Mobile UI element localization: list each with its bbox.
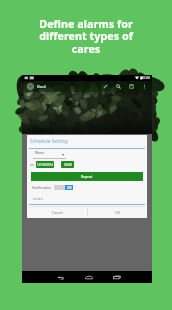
staticText: Repeat bbox=[81, 174, 93, 179]
staticText: Notification bbox=[32, 185, 52, 190]
staticText: Cancel bbox=[52, 210, 63, 215]
button[interactable]: Save bbox=[125, 81, 138, 92]
button[interactable]: More options bbox=[138, 81, 151, 92]
button[interactable]: 23:58 bbox=[61, 161, 74, 168]
button[interactable]: Edit bbox=[99, 81, 112, 92]
button[interactable]: Cancel bbox=[27, 207, 87, 218]
button[interactable]: Search bbox=[112, 81, 125, 92]
button[interactable]: Notification toggle bbox=[54, 185, 73, 190]
button[interactable]: OK bbox=[87, 207, 147, 218]
staticText: on bbox=[30, 163, 34, 167]
button[interactable]: App logo bbox=[27, 83, 34, 90]
staticText: 23:58 bbox=[142, 76, 151, 80]
staticText: 23:58 bbox=[64, 163, 72, 167]
button[interactable]: Repeat bbox=[31, 172, 143, 181]
staticText: Schedule Setting bbox=[30, 138, 68, 145]
button[interactable]: 12/16/2014 bbox=[36, 161, 54, 168]
button[interactable]: Back bbox=[54, 271, 67, 283]
button[interactable]: Home bbox=[82, 271, 95, 283]
staticText: Define alarms for different types of car… bbox=[0, 16, 172, 56]
staticText: Basil bbox=[37, 84, 47, 90]
staticText: 12/16/2014 bbox=[37, 163, 53, 167]
staticText: Water bbox=[35, 150, 45, 155]
button[interactable]: Recents bbox=[110, 271, 123, 283]
staticText: ON bbox=[67, 186, 72, 190]
staticText: OK bbox=[115, 210, 120, 215]
staticText: notes bbox=[33, 196, 43, 201]
